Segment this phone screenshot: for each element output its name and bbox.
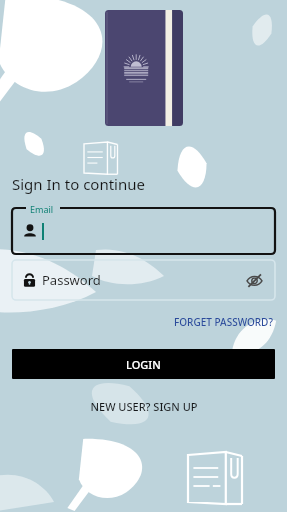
button[interactable]: Email — [12, 208, 275, 254]
button[interactable]: NEW USER? SIGN UP — [86, 397, 202, 416]
staticText: NEW USER? SIGN UP — [90, 399, 198, 414]
staticText: Sign In to continue — [12, 174, 145, 194]
button[interactable]: FORGET PASSWORD? — [172, 313, 275, 331]
staticText: LOGIN — [126, 357, 161, 372]
button[interactable]: Show password — [243, 269, 265, 291]
staticText: FORGET PASSWORD? — [174, 315, 273, 329]
staticText: Password — [42, 271, 101, 289]
button[interactable]: LOGIN — [12, 349, 275, 379]
staticText: Email — [30, 203, 54, 215]
button[interactable]: Password — [12, 260, 275, 300]
